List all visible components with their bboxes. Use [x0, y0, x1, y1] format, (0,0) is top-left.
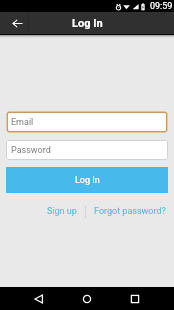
- staticText: Password: [11, 145, 51, 156]
- staticText: Log In: [75, 175, 100, 186]
- staticText: Log In: [72, 17, 103, 30]
- button[interactable]: Back: [6, 12, 28, 34]
- button[interactable]: Sign up: [39, 203, 85, 220]
- staticText: Email: [11, 117, 34, 128]
- button[interactable]: Password: [6, 140, 168, 160]
- staticText: Forgot password?: [94, 206, 166, 217]
- staticText: 09:59: [150, 1, 173, 12]
- button[interactable]: Recent apps: [124, 288, 146, 310]
- staticText: Sign up: [47, 206, 77, 217]
- button[interactable]: Back: [28, 288, 50, 310]
- button[interactable]: Home: [76, 288, 98, 310]
- button[interactable]: Forgot password?: [86, 203, 174, 220]
- button[interactable]: Email: [6, 111, 168, 133]
- button[interactable]: Log In: [6, 167, 168, 193]
